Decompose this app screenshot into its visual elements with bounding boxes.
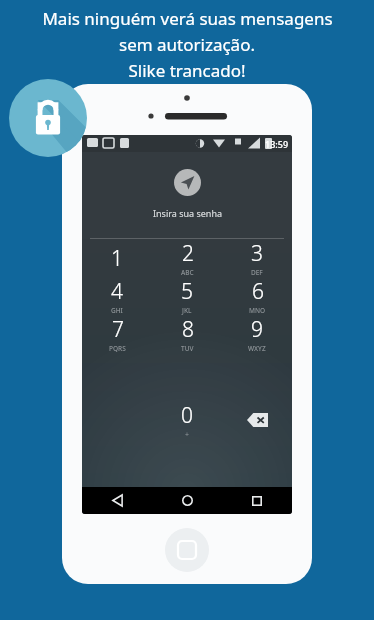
staticText: Insira sua senha (153, 207, 222, 219)
staticText: DEF (251, 268, 263, 277)
staticText: 2 (182, 239, 194, 268)
staticText: sem autorização. (119, 33, 255, 56)
button[interactable]: 0 (152, 353, 222, 487)
staticText: 5 (181, 277, 193, 306)
button[interactable]: 6 (222, 277, 292, 315)
staticText: 4 (111, 277, 123, 306)
button[interactable]: Backspace (222, 353, 292, 487)
button[interactable]: 3 (222, 239, 292, 277)
staticText: PQRS (109, 344, 126, 353)
staticText: 1 (111, 244, 123, 273)
button[interactable]: 9 (222, 315, 292, 353)
staticText: 13:59 (265, 138, 289, 150)
staticText: WXYZ (248, 344, 266, 353)
staticText: JKL (182, 306, 192, 315)
button[interactable]: 1 (82, 239, 152, 277)
button[interactable]: Home button (165, 528, 209, 572)
button[interactable]: 8 (152, 315, 222, 353)
staticText: 6 (252, 277, 264, 306)
button[interactable]: Recent apps (222, 487, 292, 514)
staticText: Slike trancado! (128, 59, 246, 82)
button[interactable]: Home (152, 487, 222, 514)
button[interactable]: Back (82, 487, 152, 514)
staticText: ABC (181, 268, 194, 277)
staticText: 8 (182, 315, 194, 344)
staticText: GHI (111, 306, 123, 315)
staticText: + (185, 430, 190, 440)
staticText: Mais ninguém verá suas mensagens (42, 7, 333, 30)
staticText: 9 (251, 315, 263, 344)
staticText: TUV (181, 344, 194, 353)
staticText: 0 (181, 401, 193, 430)
staticText: MNO (249, 306, 266, 315)
staticText: 7 (112, 315, 124, 344)
button[interactable]: 4 (82, 277, 152, 315)
button[interactable]: 7 (82, 315, 152, 353)
button[interactable]: 2 (152, 239, 222, 277)
staticText: 3 (251, 239, 263, 268)
button[interactable]: 5 (152, 277, 222, 315)
